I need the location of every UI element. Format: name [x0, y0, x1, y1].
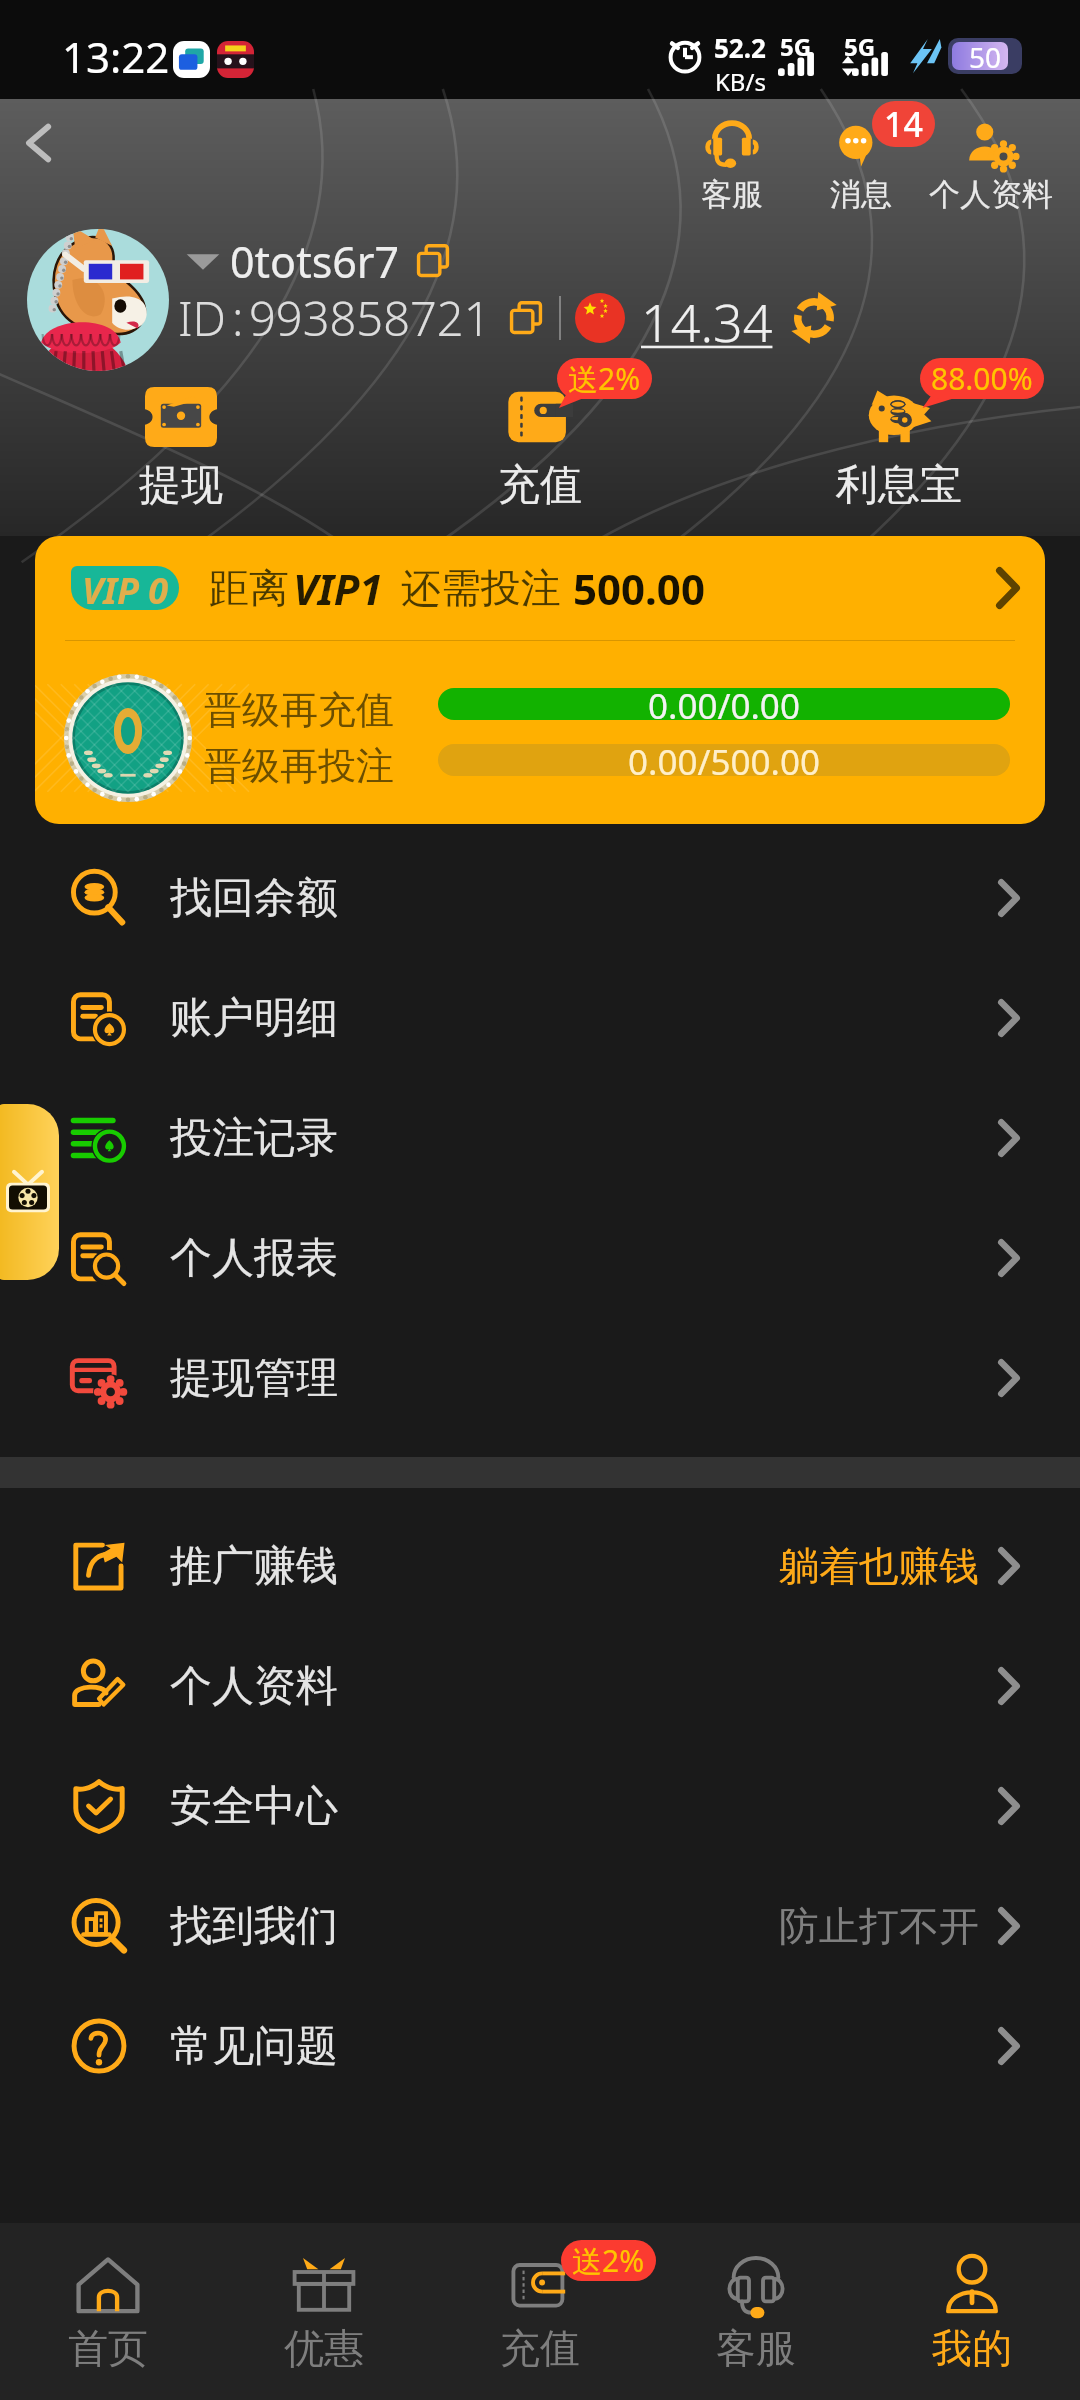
staticText: 晋级再充值	[204, 686, 394, 734]
staticText: 账户明细	[170, 992, 338, 1045]
button[interactable]: 个人报表	[0, 1198, 1080, 1318]
staticText: 找到我们	[170, 1900, 338, 1953]
button[interactable]: 我的	[864, 2223, 1080, 2400]
staticText: 距离	[209, 563, 289, 613]
staticText: 500.00	[573, 560, 705, 617]
staticText: 14	[884, 101, 923, 147]
staticText: 0.00/500.00	[628, 738, 820, 782]
button[interactable]: 提现管理	[0, 1318, 1080, 1438]
staticText: 5G	[844, 30, 876, 63]
button[interactable]: 安全中心	[0, 1746, 1080, 1866]
staticText: 投注记录	[170, 1112, 338, 1165]
button[interactable]: 消息	[781, 119, 941, 229]
staticText: 消息	[830, 175, 892, 214]
button[interactable]: 个人资料	[0, 1626, 1080, 1746]
staticText: 还需投注	[401, 563, 561, 613]
button[interactable]: 推广赚钱	[0, 1506, 1080, 1626]
button[interactable]: 提现	[66, 387, 296, 527]
staticText: 送2%	[568, 358, 641, 399]
staticText: 客服	[701, 175, 763, 214]
staticText: 88.00%	[931, 358, 1033, 399]
staticText: 找回余额	[170, 872, 338, 925]
staticText: 常见问题	[170, 2020, 338, 2073]
button[interactable]: Live sports	[0, 1104, 59, 1280]
button[interactable]: 首页	[0, 2223, 216, 2400]
staticText: 晋级再投注	[204, 742, 394, 790]
button[interactable]: VIP 0	[35, 536, 1045, 824]
button[interactable]: 账户明细	[0, 958, 1080, 1078]
staticText: 躺着也赚钱	[779, 1541, 979, 1591]
staticText: :	[232, 286, 244, 350]
staticText: 5G	[780, 30, 812, 63]
button[interactable]: 常见问题	[0, 1986, 1080, 2106]
staticText: 首页	[68, 2323, 148, 2373]
button[interactable]: 找到我们	[0, 1866, 1080, 1986]
staticText: ID	[178, 286, 227, 350]
button[interactable]: 投注记录	[0, 1078, 1080, 1198]
staticText: 提现管理	[170, 1352, 338, 1405]
staticText: 我的	[932, 2323, 1012, 2373]
staticText: 安全中心	[170, 1780, 338, 1833]
staticText: 50	[969, 38, 1002, 74]
button[interactable]: 客服	[648, 2223, 864, 2400]
button[interactable]: 找回余额	[0, 838, 1080, 958]
staticText: 客服	[716, 2323, 796, 2373]
staticText: 个人资料	[929, 175, 1053, 214]
staticText: 推广赚钱	[170, 1540, 338, 1593]
button[interactable]: 充值	[425, 387, 655, 527]
button[interactable]: Copy username	[414, 242, 452, 280]
button[interactable]: 充值	[432, 2223, 648, 2400]
button[interactable]: Back	[4, 109, 72, 177]
staticText: 993858721	[249, 286, 491, 350]
staticText: 0tots6r7	[230, 232, 400, 291]
staticText: 送2%	[572, 2240, 645, 2281]
button[interactable]: Copy ID	[507, 299, 545, 337]
button[interactable]: 个人资料	[911, 119, 1071, 229]
button[interactable]: Avatar	[27, 229, 169, 371]
staticText: VIP 0	[82, 566, 169, 610]
staticText: 个人报表	[170, 1232, 338, 1285]
staticText: 提现	[139, 459, 223, 512]
staticText: 14.34	[641, 286, 773, 350]
staticText: KB/s	[715, 65, 766, 98]
staticText: 0.00/0.00	[648, 682, 800, 726]
staticText: 优惠	[284, 2323, 364, 2373]
button[interactable]: 客服	[652, 119, 812, 229]
button[interactable]: 优惠	[216, 2223, 432, 2400]
button[interactable]: Refresh balance	[787, 291, 841, 345]
staticText: VIP1	[293, 560, 383, 617]
staticText: 利息宝	[836, 459, 962, 512]
staticText: 防止打不开	[779, 1901, 979, 1951]
staticText: 13:22	[62, 28, 170, 85]
staticText: 充值	[498, 459, 582, 512]
button[interactable]: 利息宝	[784, 387, 1014, 527]
staticText: 52.2	[714, 30, 766, 65]
staticText: 充值	[500, 2323, 580, 2373]
staticText: 个人资料	[170, 1660, 338, 1713]
